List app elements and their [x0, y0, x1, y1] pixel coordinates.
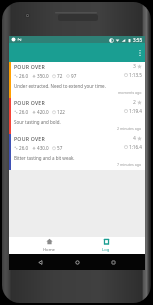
button[interactable]: Home [20, 237, 77, 254]
staticText: 4 [133, 135, 136, 142]
staticText: moments ago [118, 90, 142, 95]
button[interactable]: Home [72, 257, 83, 268]
staticText: 26.0 [19, 109, 29, 115]
staticText: Log [102, 247, 110, 253]
staticText: 7 minutes ago [117, 162, 142, 167]
staticText: POUR OVER [14, 135, 45, 142]
staticText: 3 [133, 63, 136, 70]
button[interactable]: Log [77, 237, 134, 254]
staticText: 2 minutes ago [117, 126, 142, 131]
button[interactable]: POUR OVER [9, 134, 145, 170]
staticText: 350.0 [37, 73, 49, 79]
staticText: 26.0 [19, 145, 29, 151]
staticText: Under extracted. Need to extend your tim… [14, 83, 106, 89]
button[interactable]: POUR OVER [9, 98, 145, 134]
staticText: 97 [71, 73, 77, 79]
staticText: 72 [57, 73, 63, 79]
staticText: 26.0 [19, 73, 29, 79]
staticText: 430.0 [37, 145, 49, 151]
button[interactable]: POUR OVER [9, 62, 145, 98]
staticText: Sour tasting and bold. [14, 119, 61, 125]
staticText: 57 [57, 145, 63, 151]
staticText: Bitter tasting and a bit weak. [14, 155, 75, 161]
staticText: Home [43, 247, 55, 253]
staticText: 1:13.5 [129, 72, 142, 78]
staticText: 1:16.4 [129, 144, 142, 150]
staticText: 2 [133, 99, 136, 106]
staticText: 3:55 [133, 37, 143, 43]
staticText: 1:19.4 [129, 108, 142, 114]
staticText: 420.0 [37, 109, 49, 115]
button[interactable]: Recent apps [108, 257, 119, 268]
staticText: POUR OVER [14, 99, 45, 106]
button[interactable]: More options [135, 43, 145, 62]
staticText: 122 [57, 109, 65, 115]
staticText: POUR OVER [14, 63, 45, 70]
button[interactable]: Back [35, 257, 46, 268]
